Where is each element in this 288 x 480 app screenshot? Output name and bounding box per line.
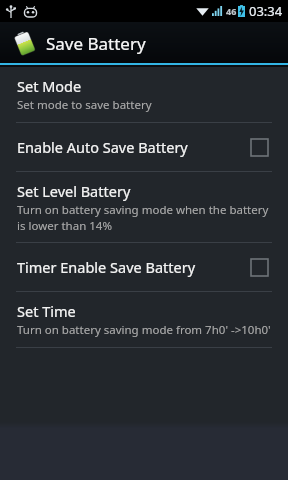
staticText: Timer Enable Save Battery — [17, 257, 196, 277]
button[interactable]: Set Level Battery — [0, 172, 288, 242]
staticText: 03:34 — [249, 2, 283, 20]
staticText: Set mode to save battery — [17, 97, 152, 113]
staticText: Set Mode — [17, 76, 82, 96]
button[interactable]: Set Time — [0, 292, 288, 347]
staticText: Set Time — [17, 301, 76, 321]
button[interactable]: Toggle Timer Enable Save Battery — [244, 252, 274, 282]
staticText: Turn on battery saving mode when the bat… — [17, 202, 274, 233]
staticText: Save Battery — [46, 32, 146, 55]
staticText: Turn on battery saving mode from 7h0' ->… — [17, 322, 271, 338]
button[interactable]: Toggle Enable Auto Save Battery — [244, 132, 274, 162]
button[interactable]: Timer Enable Save Battery — [0, 243, 288, 291]
staticText: Set Level Battery — [17, 181, 131, 201]
button[interactable]: Enable Auto Save Battery — [0, 123, 288, 171]
staticText: 46 — [226, 5, 237, 17]
staticText: Enable Auto Save Battery — [17, 137, 188, 157]
button[interactable]: Set Mode — [0, 67, 288, 122]
